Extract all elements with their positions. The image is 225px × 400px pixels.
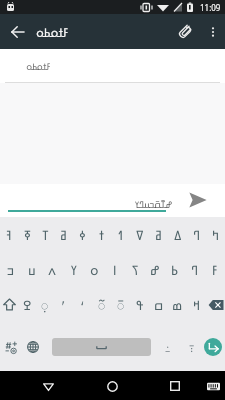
staticText: ߹ — [189, 340, 195, 355]
button[interactable]: ߣ — [187, 217, 206, 252]
staticText: ߝߠ߫ߛ߫ߏߎߣߌ — [8, 198, 172, 210]
staticText: ߙ — [99, 226, 105, 244]
button[interactable]: ߡ — [168, 217, 187, 252]
button[interactable]: ߣ — [185, 252, 205, 287]
button[interactable]: ߍ — [42, 252, 63, 287]
staticText: ߥ — [155, 226, 162, 244]
staticText: ߧ — [24, 226, 31, 244]
staticText: ߣ — [191, 261, 199, 279]
button[interactable]: ߙ — [92, 217, 111, 252]
button[interactable]: ߎ — [21, 252, 42, 287]
button[interactable]: Navigate up — [0, 14, 35, 49]
button[interactable]: ߲ — [36, 287, 54, 322]
staticText: ߤ — [212, 226, 220, 244]
button[interactable]: ߫ — [111, 287, 130, 322]
button[interactable]: ߹ — [182, 337, 202, 357]
button[interactable]: ߓ — [205, 252, 225, 287]
button[interactable]: ߥ — [54, 217, 73, 252]
staticText: ߦ — [79, 226, 86, 244]
button[interactable]: ߬ — [92, 287, 111, 322]
staticText: ߠ — [42, 226, 49, 244]
staticText: ߎ — [28, 261, 36, 279]
staticText: ߬ — [98, 296, 106, 314]
button[interactable]: ߜ — [130, 217, 149, 252]
button[interactable]: ߐ — [18, 287, 36, 322]
button[interactable]: Switch keyboard — [201, 374, 225, 398]
staticText: ߟ — [136, 296, 144, 314]
button[interactable]: ߘ — [168, 287, 187, 322]
button[interactable]: Attach file — [169, 16, 201, 48]
button[interactable]: Symbols — [1, 337, 21, 357]
button[interactable]: Back — [34, 372, 62, 400]
staticText: ߝ — [150, 261, 160, 279]
button[interactable]: ߋ — [84, 252, 105, 287]
button[interactable]: ߌ — [63, 252, 84, 287]
button[interactable]: ߏ — [0, 252, 21, 287]
staticText: ߋ — [90, 261, 99, 279]
staticText: ߐ — [23, 296, 32, 314]
button[interactable]: ߵ — [73, 287, 92, 322]
button[interactable]: ߤ — [206, 217, 225, 252]
button[interactable]: Change language — [23, 337, 43, 357]
button[interactable]: Home — [98, 372, 126, 400]
staticText: ߊ — [113, 261, 117, 279]
staticText: ߓߙߋߕߋ — [36, 24, 69, 40]
button[interactable]: ߕ — [165, 252, 185, 287]
staticText: ߍ — [48, 261, 57, 279]
button[interactable]: Enter — [202, 336, 223, 357]
button[interactable]: ߖ — [125, 252, 145, 287]
button[interactable]: ߔ — [0, 217, 18, 252]
staticText: ߌ — [71, 261, 77, 279]
staticText: ߓ — [212, 261, 218, 279]
button[interactable]: Send — [184, 186, 211, 213]
button[interactable]: ߴ — [54, 287, 73, 322]
button[interactable]: ߟ — [130, 287, 149, 322]
staticText: ߕ — [171, 261, 179, 279]
staticText: ߛ — [154, 296, 164, 314]
staticText: ߞ — [193, 296, 201, 314]
staticText: ߵ — [80, 296, 85, 314]
staticText: ߸ — [165, 340, 171, 355]
button[interactable]: Recent apps — [161, 372, 189, 400]
button[interactable]: Backspace — [206, 287, 225, 322]
staticText: ߥ — [60, 226, 67, 244]
staticText: ߏ — [7, 261, 15, 279]
button[interactable]: Shift — [0, 287, 18, 322]
button[interactable]: ߞ — [187, 287, 206, 322]
button[interactable]: ߝ — [145, 252, 165, 287]
staticText: ߴ — [61, 296, 66, 314]
button[interactable]: Space — [52, 338, 151, 356]
button[interactable]: ߥ — [149, 217, 168, 252]
staticText: ߘ — [172, 296, 183, 314]
staticText: ߜ — [136, 226, 144, 244]
staticText: 11:09 — [200, 2, 221, 13]
button[interactable]: ߗ — [111, 217, 130, 252]
button[interactable]: ߛ — [149, 287, 168, 322]
staticText: ߓߙߋߕߋ — [26, 60, 51, 72]
button[interactable]: ߊ — [105, 252, 125, 287]
button[interactable]: ߸ — [158, 337, 178, 357]
staticText: ߫ — [117, 296, 125, 314]
button[interactable]: ߦ — [73, 217, 92, 252]
staticText: ߡ — [174, 226, 182, 244]
staticText: ߖ — [132, 261, 139, 279]
staticText: ߔ — [6, 226, 12, 244]
staticText: ߲ — [41, 296, 49, 314]
staticText: ߗ — [118, 226, 123, 244]
button[interactable]: More options — [201, 20, 225, 44]
button[interactable]: ߠ — [36, 217, 54, 252]
staticText: ߣ — [193, 226, 201, 244]
button[interactable]: ߧ — [18, 217, 36, 252]
